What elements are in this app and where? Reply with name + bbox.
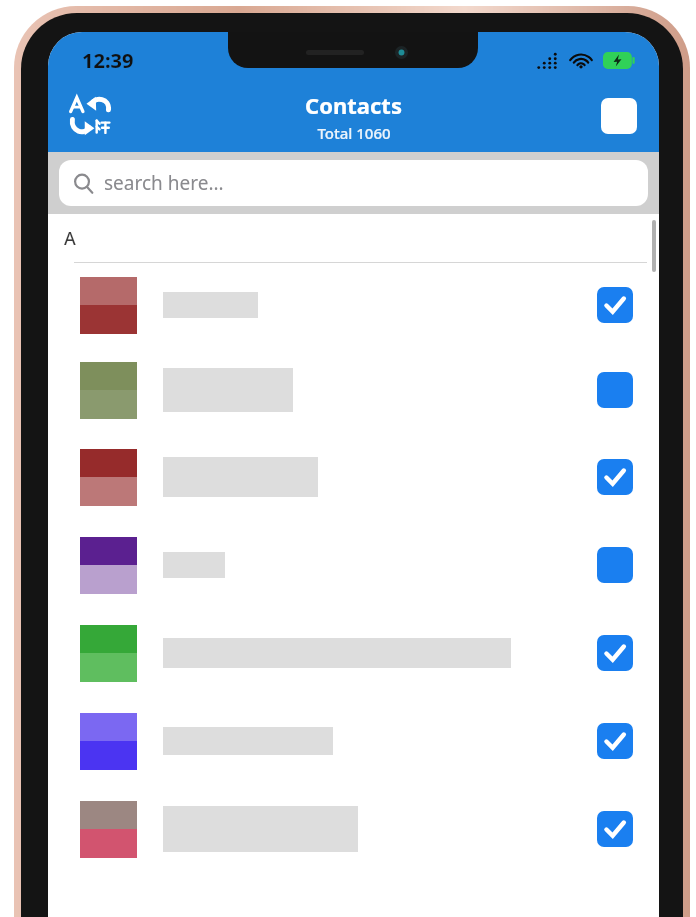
button[interactable]: Not selected: [48, 347, 659, 433]
button[interactable]: Selected: [593, 719, 637, 763]
button[interactable]: Translate names: [64, 90, 116, 142]
button[interactable]: Selected: [48, 785, 659, 873]
button[interactable]: Selected: [48, 609, 659, 697]
staticText: 12:39: [82, 47, 134, 74]
button[interactable]: Not selected: [593, 368, 637, 412]
staticText: A: [64, 226, 76, 251]
button[interactable]: Selected: [593, 807, 637, 851]
button[interactable]: Selected: [593, 455, 637, 499]
button[interactable]: Selected: [593, 283, 637, 327]
staticText: Contacts: [305, 90, 402, 120]
button[interactable]: Selected: [593, 631, 637, 675]
button[interactable]: Selected: [48, 263, 659, 347]
button[interactable]: Select all: [597, 94, 641, 138]
button[interactable]: Not selected: [48, 521, 659, 609]
button[interactable]: Not selected: [593, 543, 637, 587]
staticText: search here...: [104, 170, 224, 196]
button[interactable]: Selected: [48, 697, 659, 785]
button[interactable]: search here...: [59, 160, 648, 206]
button[interactable]: Selected: [48, 433, 659, 521]
staticText: Total 1060: [317, 123, 391, 143]
